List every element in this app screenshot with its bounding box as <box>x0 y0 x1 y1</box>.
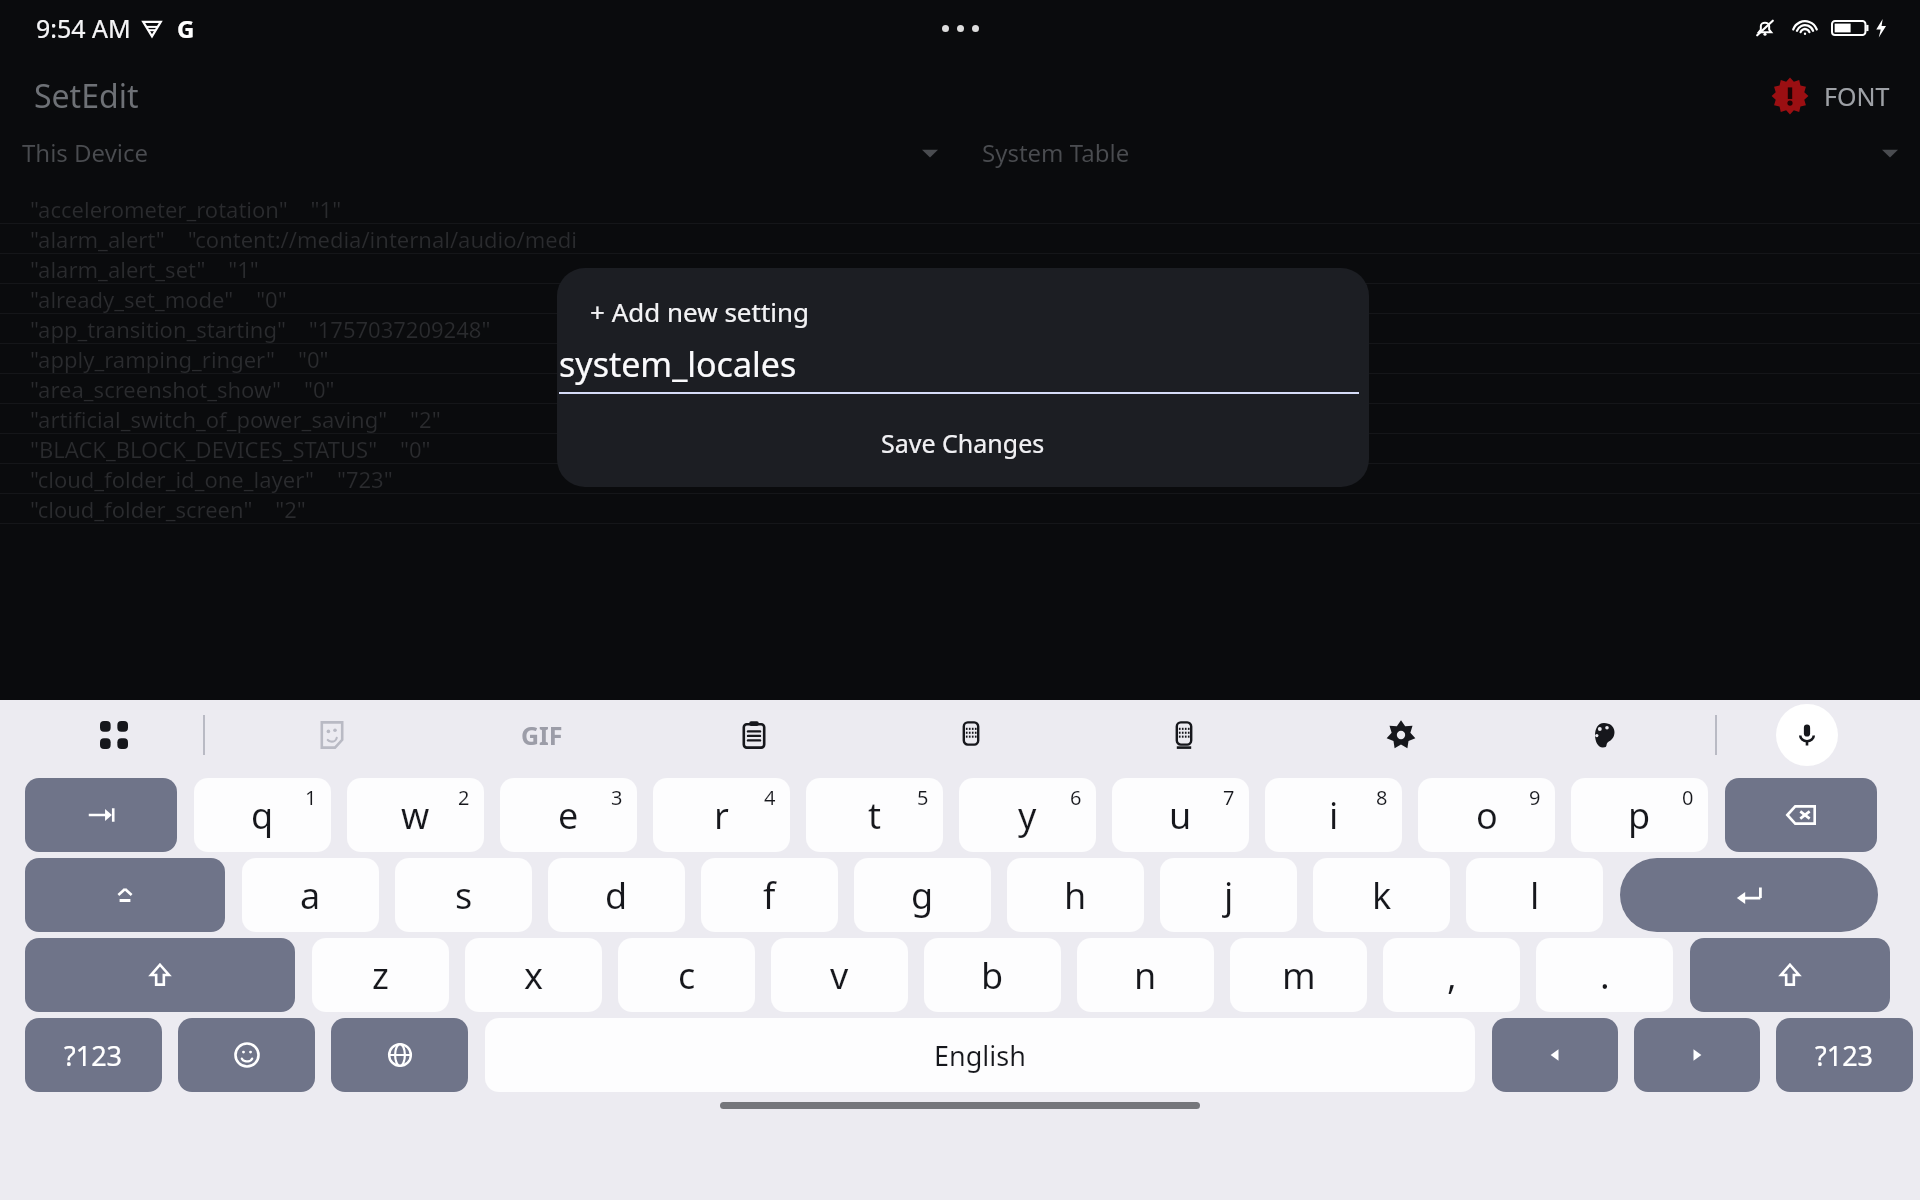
staticText: "cloud_folder_screen" "2" <box>30 494 306 524</box>
button[interactable]: "alarm_alert_set" "1" <box>0 254 1920 284</box>
button[interactable]: "accelerometer_rotation" "1" <box>0 194 1920 224</box>
staticText: 5 <box>917 784 929 811</box>
staticText: b <box>981 951 1004 1000</box>
staticText: "artificial_switch_of_power_saving" "2" <box>30 404 441 434</box>
button[interactable]: Move cursor right <box>1634 1018 1760 1092</box>
button[interactable]: g <box>854 858 991 932</box>
staticText: e <box>558 791 579 840</box>
button[interactable]: y <box>959 778 1096 852</box>
staticText: k <box>1372 871 1392 920</box>
staticText: z <box>372 951 389 1000</box>
staticText: Save Changes <box>881 426 1045 460</box>
button[interactable]: Caps lock <box>25 858 225 932</box>
button[interactable]: "cloud_folder_id_one_layer" "723" <box>0 464 1920 494</box>
button[interactable]: Font <box>1770 76 1890 116</box>
button[interactable]: This Device <box>22 136 938 169</box>
button[interactable]: "app_transition_starting" "1757037209248… <box>0 314 1920 344</box>
button[interactable]: l <box>1466 858 1603 932</box>
button[interactable]: ?123 <box>25 1018 162 1092</box>
staticText: This Device <box>22 136 149 169</box>
staticText: "BLACK_BLOCK_DEVICES_STATUS" "0" <box>30 434 431 464</box>
staticText: s <box>455 871 473 920</box>
button[interactable]: "cloud_folder_screen" "2" <box>0 494 1920 524</box>
button[interactable]: Move cursor left <box>1492 1018 1618 1092</box>
button[interactable]: "BLACK_BLOCK_DEVICES_STATUS" "0" <box>0 434 1920 464</box>
staticText: w <box>401 791 430 840</box>
staticText: "alarm_alert_set" "1" <box>30 254 259 284</box>
button[interactable]: Keyboard modes <box>88 709 140 761</box>
staticText: h <box>1064 871 1087 920</box>
button[interactable]: One-handed mode <box>1158 709 1210 761</box>
staticText: 9:54 AM <box>36 11 131 45</box>
button[interactable]: v <box>771 938 908 1012</box>
button[interactable]: ?123 <box>1776 1018 1913 1092</box>
button[interactable]: Themes <box>1578 709 1630 761</box>
staticText: + Add new setting <box>590 294 810 329</box>
button[interactable]: a <box>242 858 379 932</box>
button[interactable]: Settings <box>1375 709 1427 761</box>
button[interactable]: Stickers <box>306 709 358 761</box>
staticText: 0 <box>1682 784 1694 811</box>
button[interactable]: w <box>347 778 484 852</box>
button[interactable]: z <box>312 938 449 1012</box>
staticText: x <box>524 951 544 1000</box>
button[interactable]: Clipboard <box>728 709 780 761</box>
button[interactable]: b <box>924 938 1061 1012</box>
staticText: o <box>1476 791 1498 840</box>
button[interactable]: Backspace <box>1725 778 1877 852</box>
button[interactable]: "alarm_alert" "content://media/internal/… <box>0 224 1920 254</box>
button[interactable]: "area_screenshot_show" "0" <box>0 374 1920 404</box>
button[interactable]: Save Changes <box>557 420 1369 466</box>
staticText: FONT <box>1824 79 1890 113</box>
staticText: t <box>868 791 881 840</box>
button[interactable]: r <box>653 778 790 852</box>
staticText: d <box>605 871 628 920</box>
button[interactable]: "artificial_switch_of_power_saving" "2" <box>0 404 1920 434</box>
button[interactable]: Number row <box>945 709 997 761</box>
button[interactable]: u <box>1112 778 1249 852</box>
button[interactable]: System Table <box>982 136 1898 169</box>
button[interactable]: s <box>395 858 532 932</box>
staticText: y <box>1018 791 1037 840</box>
button[interactable]: English <box>485 1018 1475 1092</box>
button[interactable]: j <box>1160 858 1297 932</box>
button[interactable]: o <box>1418 778 1555 852</box>
button[interactable]: k <box>1313 858 1450 932</box>
button[interactable]: t <box>806 778 943 852</box>
staticText: 7 <box>1223 784 1235 811</box>
button[interactable]: Shift <box>25 938 295 1012</box>
button[interactable]: h <box>1007 858 1144 932</box>
button[interactable]: x <box>465 938 602 1012</box>
staticText: l <box>1530 871 1540 920</box>
button[interactable]: m <box>1230 938 1367 1012</box>
button[interactable]: Shift <box>1690 938 1890 1012</box>
button[interactable]: Emoji <box>178 1018 315 1092</box>
button[interactable]: . <box>1536 938 1673 1012</box>
button[interactable]: Change language <box>331 1018 468 1092</box>
staticText: GIF <box>521 718 563 752</box>
staticText: j <box>1224 871 1234 920</box>
staticText: c <box>678 951 696 1000</box>
staticText: r <box>714 791 729 840</box>
button[interactable]: e <box>500 778 637 852</box>
button[interactable]: c <box>618 938 755 1012</box>
staticText: . <box>1600 951 1610 1000</box>
button[interactable]: n <box>1077 938 1214 1012</box>
button[interactable]: , <box>1383 938 1520 1012</box>
button[interactable]: "apply_ramping_ringer" "0" <box>0 344 1920 374</box>
staticText: ?123 <box>1815 1037 1874 1074</box>
staticText: "alarm_alert" "content://media/internal/… <box>30 224 577 254</box>
staticText: ?123 <box>64 1037 123 1074</box>
button[interactable]: Voice input <box>1776 704 1838 766</box>
button[interactable]: q <box>194 778 331 852</box>
button[interactable]: Tab <box>25 778 177 852</box>
button[interactable]: GIF <box>515 712 569 758</box>
button[interactable]: f <box>701 858 838 932</box>
button[interactable]: d <box>548 858 685 932</box>
staticText: p <box>1628 791 1651 840</box>
button[interactable]: i <box>1265 778 1402 852</box>
staticText: a <box>300 871 321 920</box>
button[interactable]: "already_set_mode" "0" <box>0 284 1920 314</box>
button[interactable]: Enter <box>1620 858 1878 932</box>
button[interactable]: p <box>1571 778 1708 852</box>
